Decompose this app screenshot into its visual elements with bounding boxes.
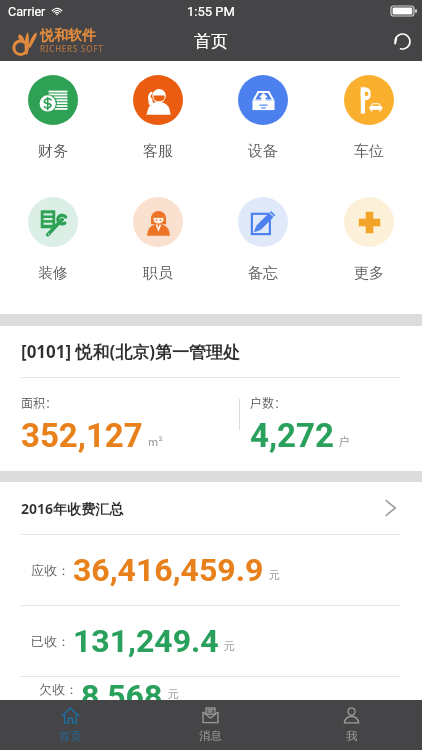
staticText: 客服	[143, 142, 173, 161]
staticText: 应收：	[31, 562, 70, 578]
staticText: 我	[346, 729, 358, 743]
staticText: 2016年收费汇总	[21, 499, 124, 518]
staticText: 消息	[199, 729, 222, 743]
button[interactable]: 备忘	[210, 197, 316, 283]
staticText: 更多	[354, 264, 384, 283]
staticText: 4,272	[250, 416, 334, 455]
staticText: 财务	[38, 142, 68, 161]
button[interactable]: 2016年收费汇总	[0, 482, 422, 534]
staticText: 面积：	[21, 394, 58, 411]
staticText: 设备	[248, 142, 278, 161]
button[interactable]: 车位	[316, 75, 422, 161]
staticText: 1:55 PM	[187, 4, 235, 19]
button[interactable]: 装修	[0, 197, 105, 283]
staticText: 首页	[194, 31, 228, 52]
staticText: [0101] 悦和(北京)第一管理处	[21, 340, 241, 363]
staticText: 8,568	[81, 677, 163, 700]
staticText: 元	[224, 639, 235, 653]
staticText: 首页	[59, 729, 82, 743]
button[interactable]: 客服	[105, 75, 210, 161]
staticText: RICHERS SOFT	[40, 43, 104, 54]
staticText: 131,249.4	[73, 622, 219, 660]
staticText: 元	[269, 568, 280, 582]
button[interactable]: 消息	[140, 700, 281, 750]
button[interactable]: 更多	[316, 197, 422, 283]
staticText: 36,416,459.9	[73, 551, 264, 589]
staticText: Carrier	[8, 4, 46, 19]
staticText: 车位	[354, 142, 384, 161]
staticText: 352,127	[21, 416, 143, 455]
button[interactable]: 财务	[0, 75, 105, 161]
staticText: 户数：	[250, 394, 287, 411]
button[interactable]: Refresh	[382, 22, 422, 61]
button[interactable]: 职员	[105, 197, 210, 283]
staticText: 户	[339, 433, 350, 449]
staticText: m²	[148, 433, 163, 449]
staticText: 欠收：	[39, 681, 78, 697]
staticText: 元	[168, 687, 179, 701]
staticText: 悦和软件	[40, 27, 96, 45]
staticText: 装修	[38, 264, 68, 283]
staticText: 备忘	[248, 264, 278, 283]
staticText: 已收：	[31, 633, 70, 649]
staticText: 职员	[143, 264, 173, 283]
button[interactable]: 首页	[0, 700, 140, 750]
button[interactable]: 我	[281, 700, 422, 750]
button[interactable]: 设备	[210, 75, 316, 161]
